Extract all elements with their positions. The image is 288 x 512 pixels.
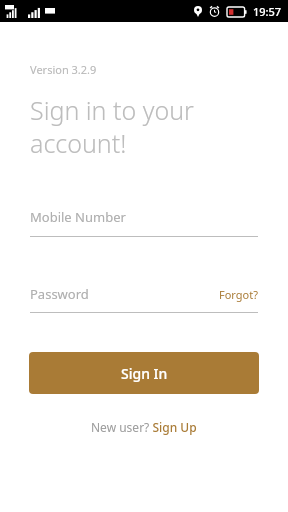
button[interactable]: Sign In <box>29 352 259 394</box>
button[interactable]: Mobile Number <box>30 208 258 237</box>
button[interactable]: Password <box>30 285 89 303</box>
other: Location <box>194 6 202 17</box>
button[interactable]: New user? Sign Up <box>87 415 201 439</box>
staticText: Sign in to your account! <box>30 93 194 160</box>
staticText: Sign In <box>121 364 168 383</box>
staticText: New user? Sign Up <box>91 419 197 435</box>
other: Alarm <box>209 6 220 17</box>
staticText: Version 3.2.9 <box>30 62 97 77</box>
staticText: 19:57 <box>253 4 282 19</box>
button[interactable]: Forgot? <box>219 287 258 302</box>
staticText: Mobile Number <box>30 208 126 226</box>
staticText: Forgot? <box>219 287 258 302</box>
other: Battery <box>227 7 247 17</box>
